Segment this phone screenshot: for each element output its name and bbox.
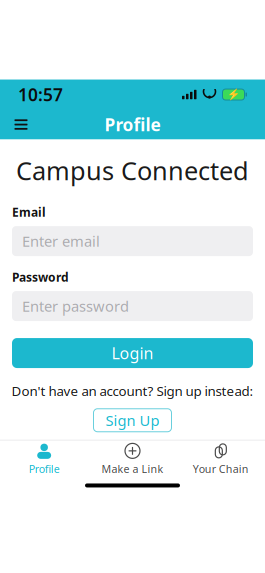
button[interactable]: Enter password [12,291,253,321]
staticText: Enter email [22,231,100,251]
staticText: Sign Up [105,410,159,430]
staticText: Enter password [22,296,129,316]
button[interactable]: Make a Link [88,438,177,481]
button[interactable]: Sign Up [93,409,171,432]
button[interactable]: Enter email [12,226,253,256]
button[interactable]: Menu [6,109,36,139]
staticText: 10:57 [18,83,63,106]
staticText: Login [111,342,153,364]
staticText: Profile [29,462,60,476]
button[interactable]: Profile [0,438,88,481]
staticText: Email [12,204,46,220]
staticText: Make a Link [101,462,163,476]
button[interactable]: Login [12,338,253,368]
button[interactable]: Your Chain [177,438,265,481]
staticText: ⚡ [227,88,240,101]
staticText: Your Chain [193,462,249,476]
staticText: Campus Connected [16,153,249,187]
staticText: Don't have an account? Sign up instead: [11,382,253,400]
staticText: Profile [104,113,160,136]
staticText: Password [12,269,69,285]
